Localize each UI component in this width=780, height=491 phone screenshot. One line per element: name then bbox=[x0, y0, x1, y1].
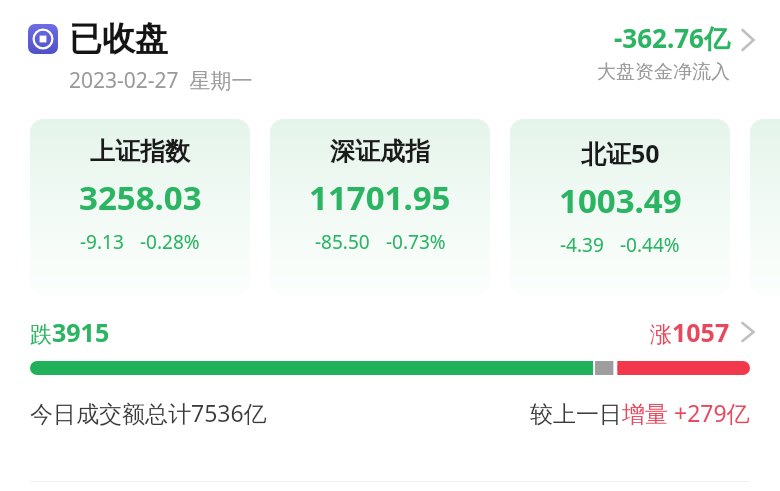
other: 大盘资金净流入详情 bbox=[738, 30, 758, 50]
button[interactable] bbox=[750, 119, 780, 295]
button[interactable]: 深证成指 bbox=[270, 119, 490, 295]
button[interactable]: 今日成交额总计7536亿 bbox=[30, 397, 750, 428]
staticText: 跌3915 bbox=[30, 315, 110, 349]
button[interactable]: 已收盘 bbox=[28, 18, 758, 95]
staticText: 较上一日增量 +279亿 bbox=[530, 397, 750, 428]
staticText: 1003.49 bbox=[559, 178, 682, 223]
staticText: -0.28% bbox=[140, 229, 200, 255]
staticText: 涨1057 bbox=[650, 315, 730, 349]
staticText: 北证50 bbox=[581, 136, 660, 170]
staticText: 深证成指 bbox=[330, 136, 430, 167]
staticText: -362.76亿 bbox=[614, 20, 730, 56]
button[interactable]: 上证指数 bbox=[30, 119, 250, 295]
staticText: 11701.95 bbox=[309, 175, 451, 220]
staticText: -85.50 bbox=[315, 229, 370, 255]
staticText: -0.73% bbox=[386, 229, 446, 255]
staticText: 大盘资金净流入 bbox=[597, 60, 730, 84]
button[interactable]: 跌3915 bbox=[30, 315, 758, 349]
staticText: -0.44% bbox=[620, 232, 680, 258]
staticText: 今日成交额总计7536亿 bbox=[30, 397, 267, 428]
staticText: -9.13 bbox=[80, 229, 124, 255]
staticText: 上证指数 bbox=[90, 136, 190, 167]
button[interactable]: 北证50 bbox=[510, 119, 730, 295]
staticText: -4.39 bbox=[560, 232, 604, 258]
staticText: 2023-02-27 星期一 bbox=[69, 66, 253, 95]
staticText: 3258.03 bbox=[79, 175, 202, 220]
staticText: 已收盘 bbox=[69, 18, 168, 60]
